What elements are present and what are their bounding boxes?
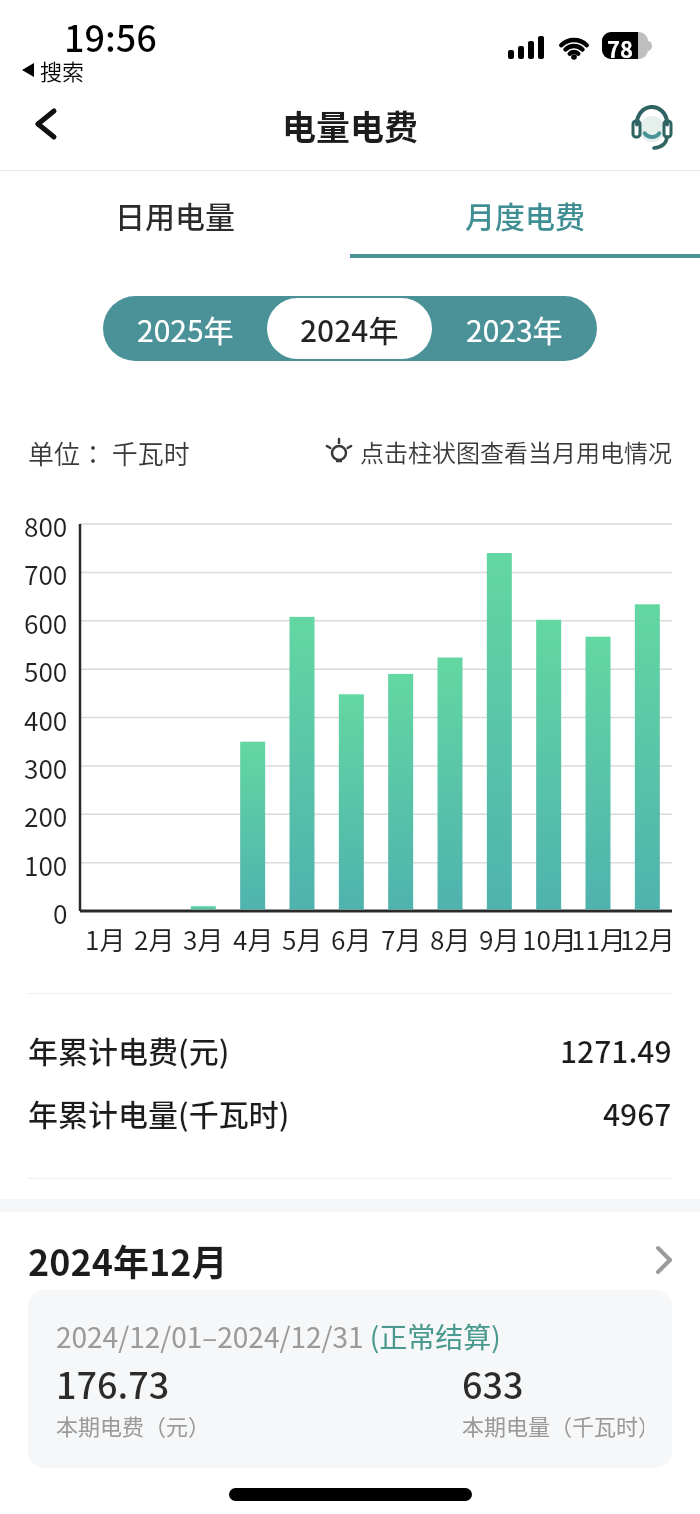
button[interactable] [20,98,72,150]
staticText: 6月 [331,920,372,958]
button[interactable]: 2023年 [432,296,597,361]
staticText: 本期电费（元） [56,1409,211,1441]
staticText: 1271.49 [560,1028,672,1071]
staticText: 400 [24,701,68,739]
button[interactable]: 2024/12/01–2024/12/31 (正常结算) [28,1290,672,1468]
staticText: 78 [607,32,633,59]
staticText: 月度电费 [465,193,585,236]
staticText: 800 [24,507,68,545]
staticText: 2024年12月 [28,1234,228,1286]
staticText: 搜索 [40,54,85,86]
staticText: 2月 [134,920,175,958]
staticText: 176.73 [56,1357,170,1409]
staticText: 日用电量 [115,193,235,236]
staticText: 2025年 [137,307,234,350]
button[interactable]: 2024年 [267,298,432,359]
staticText: 2023年 [466,307,563,350]
staticText: 点击柱状图查看当月用电情况 [360,434,672,468]
staticText: 单位： 千瓦时 [28,434,190,468]
staticText: 10月 [522,920,577,958]
staticText: 500 [24,652,68,690]
button[interactable]: 月度电费 [350,171,700,258]
staticText: 200 [24,797,68,835]
button[interactable]: 2024年12月 [28,1234,672,1286]
staticText: 电量电费 [282,101,418,150]
staticText: 0 [53,894,68,932]
staticText: 19:56 [64,10,157,62]
staticText: 100 [24,846,68,884]
staticText: 8月 [430,920,471,958]
staticText: 11月 [571,920,626,958]
staticText: 7月 [381,920,422,958]
staticText: 300 [24,749,68,787]
staticText: 3月 [183,920,224,958]
staticText: 4月 [233,920,274,958]
staticText: 600 [24,604,68,642]
staticText: 12月 [620,920,675,958]
staticText: 本期电量（千瓦时） [462,1409,644,1441]
staticText: 2024年 [300,307,399,350]
staticText: 633 [462,1357,524,1409]
staticText: 年累计电费(元) [28,1028,230,1071]
staticText: 年累计电量(千瓦时) [28,1091,290,1134]
staticText: 4967 [603,1091,672,1134]
staticText: 1月 [85,920,126,958]
staticText: 9月 [479,920,520,958]
staticText: 5月 [282,920,323,958]
button[interactable] [622,98,682,158]
button[interactable]: 日用电量 [0,171,350,258]
staticText: 700 [24,555,68,593]
button[interactable]: 2025年 [103,296,267,361]
staticText: 2024/12/01–2024/12/31 (正常结算) [56,1316,501,1357]
